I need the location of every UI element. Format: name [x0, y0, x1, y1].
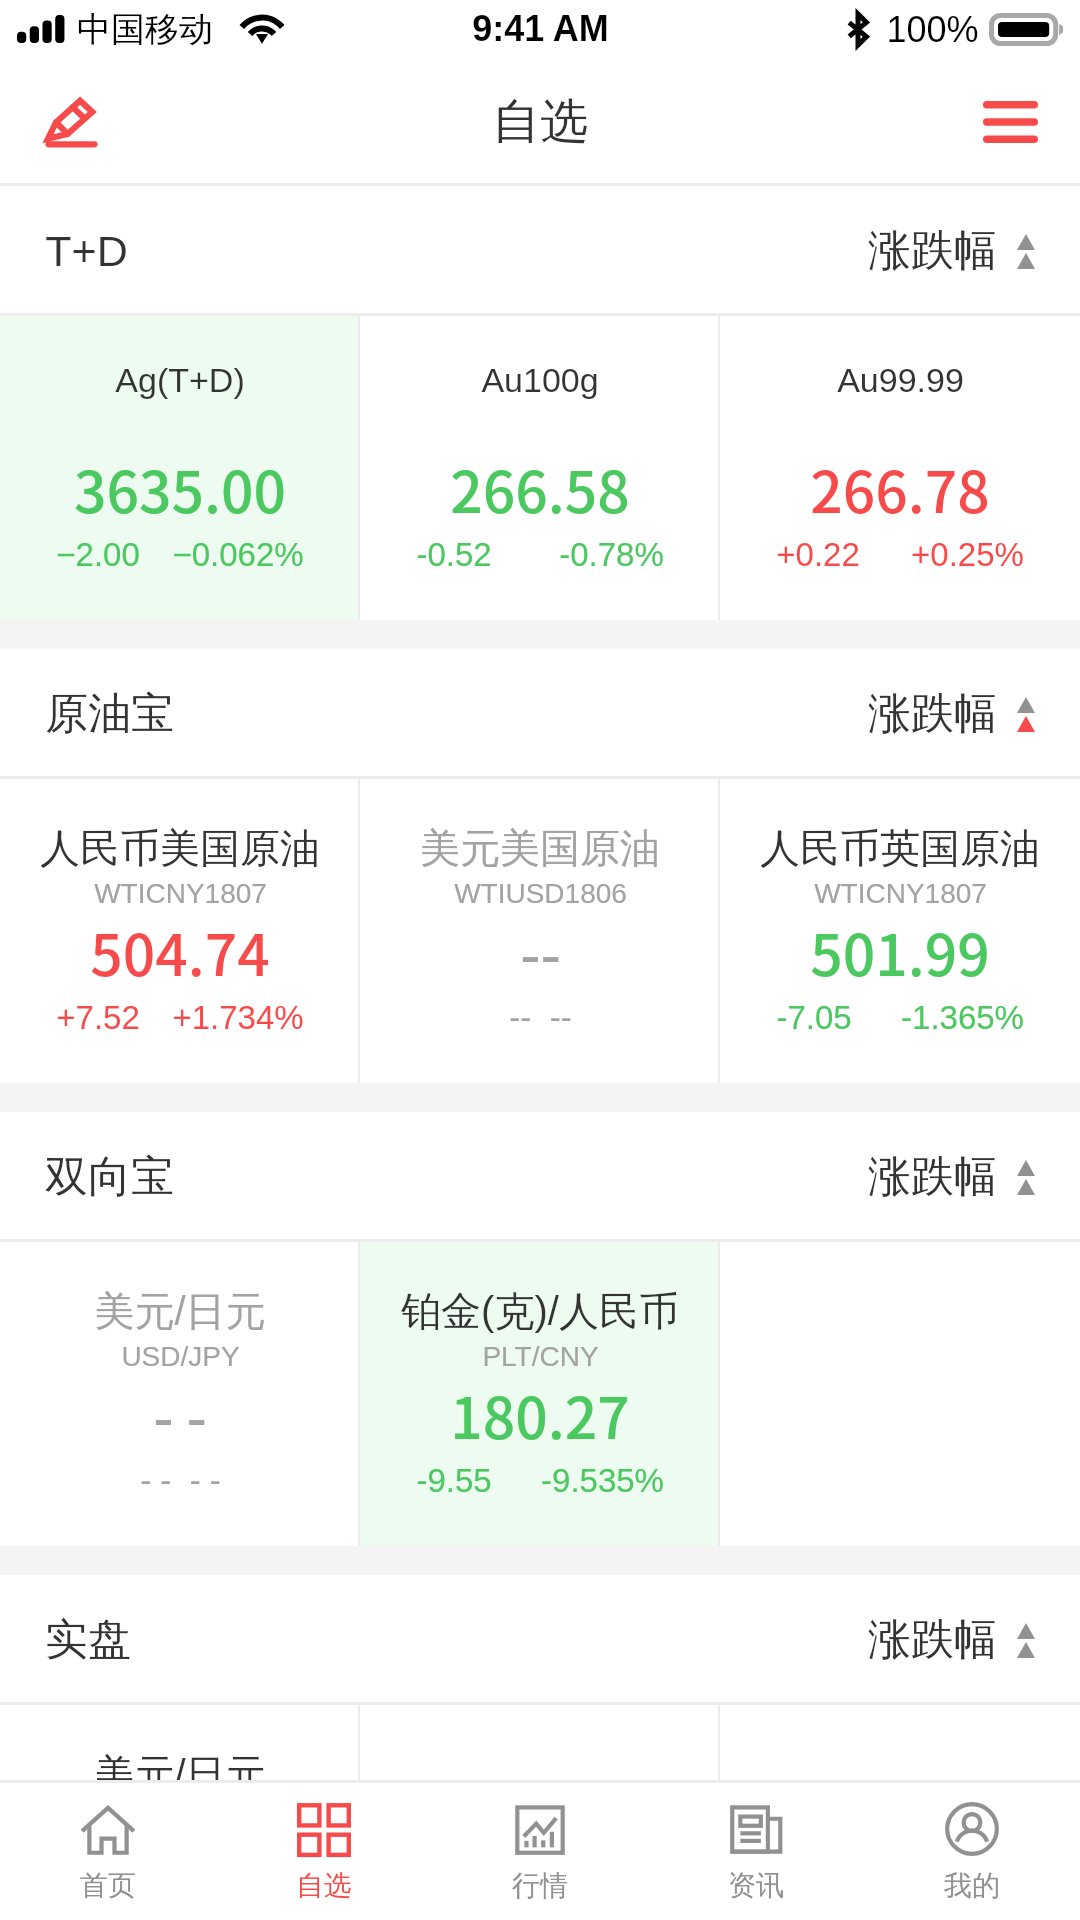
staticText: 首页	[80, 1868, 136, 1903]
staticText: 自选	[296, 1868, 352, 1903]
staticText: Au99.99	[837, 361, 964, 399]
button[interactable]: 首页	[0, 1783, 216, 1920]
staticText: 3635.00	[74, 447, 286, 530]
staticText: T+D	[45, 227, 128, 275]
staticText: 9:41 AM	[472, 8, 609, 48]
button[interactable]: Au100g	[360, 316, 720, 620]
staticText: +7.52	[56, 999, 140, 1036]
staticText: Ag(T+D)	[115, 361, 245, 399]
staticText: +1.734%	[172, 999, 304, 1036]
button[interactable]: 资讯	[648, 1783, 864, 1920]
staticText: - - - -	[140, 1462, 221, 1499]
staticText: -9.535%	[541, 1462, 664, 1499]
staticText: 行情	[512, 1868, 568, 1903]
staticText: 100%	[886, 9, 979, 49]
staticText: -7.05	[776, 999, 852, 1036]
button[interactable]: Menu	[940, 58, 1080, 186]
staticText: 双向宝	[45, 1150, 174, 1204]
staticText: 涨跌幅	[868, 1613, 997, 1667]
staticText: -0.52	[416, 536, 492, 573]
staticText: 人民币美国原油	[40, 823, 320, 873]
staticText: 资讯	[728, 1868, 784, 1903]
button[interactable]: 美元美国原油	[360, 779, 720, 1083]
staticText: -1.365%	[901, 999, 1024, 1036]
staticText: PLT/CNY	[482, 1341, 599, 1372]
staticText: −2.00	[56, 536, 140, 573]
button[interactable]: 自选	[216, 1783, 432, 1920]
staticText: - -	[153, 1373, 207, 1456]
staticText: 我的	[944, 1868, 1000, 1903]
staticText: 涨跌幅	[868, 687, 997, 741]
staticText: -9.55	[416, 1462, 492, 1499]
staticText: 504.74	[90, 910, 270, 993]
button[interactable]: 双向宝	[0, 1112, 1080, 1242]
staticText: 266.78	[810, 447, 990, 530]
button[interactable]: 美元/日元	[0, 1242, 360, 1546]
staticText: 美元美国原油	[420, 823, 660, 873]
staticText: 180.27	[450, 1373, 630, 1456]
button[interactable]: Au99.99	[720, 316, 1080, 620]
staticText: Au100g	[481, 361, 599, 399]
staticText: 涨跌幅	[868, 1150, 997, 1204]
staticText: 原油宝	[45, 687, 174, 741]
staticText: 自选	[492, 92, 588, 152]
staticText: WTICNY1807	[94, 878, 267, 909]
staticText: 266.58	[450, 447, 630, 530]
button[interactable]: 铂金(克)/人民币	[360, 1242, 720, 1546]
button[interactable]: 美元/日元	[0, 1705, 360, 1780]
staticText: --	[520, 910, 561, 993]
button[interactable]: 人民币英国原油	[720, 779, 1080, 1083]
button[interactable]: 人民币美国原油	[0, 779, 360, 1083]
staticText: USD/JPY	[121, 1341, 240, 1372]
staticText: +0.22	[776, 536, 860, 573]
staticText: 铂金(克)/人民币	[401, 1286, 679, 1336]
staticText: 美元/日元	[94, 1286, 266, 1336]
button[interactable]: 原油宝	[0, 649, 1080, 779]
staticText: -0.78%	[559, 536, 664, 573]
button[interactable]: Ag(T+D)	[0, 316, 360, 620]
staticText: 美元/日元	[94, 1749, 266, 1780]
staticText: WTIUSD1806	[454, 878, 627, 909]
button[interactable]: 实盘	[0, 1575, 1080, 1705]
button[interactable]: 我的	[864, 1783, 1080, 1920]
button[interactable]: 行情	[432, 1783, 648, 1920]
staticText: -- --	[509, 999, 572, 1036]
staticText: 实盘	[45, 1613, 131, 1667]
staticText: WTICNY1807	[814, 878, 987, 909]
staticText: +0.25%	[911, 536, 1024, 573]
staticText: 人民币英国原油	[760, 823, 1040, 873]
staticText: −0.062%	[172, 536, 304, 573]
button[interactable]: T+D	[0, 186, 1080, 316]
staticText: 中国移动	[77, 8, 213, 51]
button[interactable]: Edit watchlist	[0, 58, 140, 186]
staticText: 涨跌幅	[868, 224, 997, 278]
staticText: 501.99	[810, 910, 990, 993]
